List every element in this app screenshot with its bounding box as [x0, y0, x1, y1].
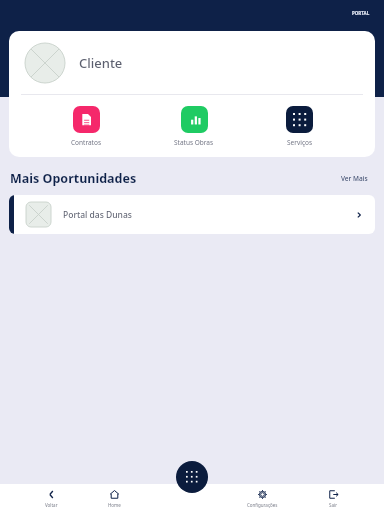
button[interactable]: Menu de aplicativos — [176, 461, 208, 493]
staticText: PORTAL — [352, 10, 370, 16]
staticText: Voltar — [45, 502, 58, 508]
staticText: Ver Mais — [341, 174, 368, 183]
button[interactable]: Status Obras — [164, 104, 224, 149]
staticText: Contratos — [71, 138, 101, 147]
button[interactable]: Portal das Dunas — [9, 195, 375, 234]
button[interactable]: Configurações — [241, 489, 284, 508]
button[interactable]: Voltar — [39, 489, 64, 508]
button[interactable]: Serviços — [276, 104, 323, 149]
button[interactable]: Ver Mais — [337, 170, 372, 187]
button[interactable]: Home — [102, 489, 127, 508]
staticText: Configurações — [247, 502, 278, 508]
staticText: Status Obras — [174, 138, 214, 147]
button[interactable]: Contratos — [61, 104, 111, 149]
staticText: Mais Oportunidades — [10, 170, 137, 187]
staticText: Portal das Dunas — [63, 209, 132, 221]
staticText: Cliente — [79, 54, 123, 72]
button[interactable]: Cliente — [9, 31, 375, 94]
staticText: Home — [108, 502, 121, 508]
staticText: Sair — [329, 502, 338, 508]
staticText: Serviços — [287, 138, 313, 147]
button[interactable]: Sair — [322, 489, 345, 508]
